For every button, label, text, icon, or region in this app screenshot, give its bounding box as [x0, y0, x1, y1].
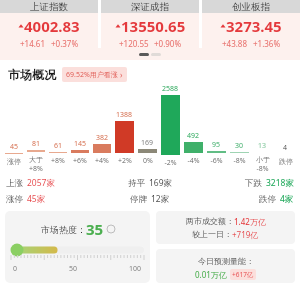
- staticText: 45: [10, 142, 19, 152]
- staticText: 169家: [149, 177, 173, 189]
- staticText: 69.52%用户看涨: [66, 70, 118, 80]
- staticText: 跌停: [279, 157, 293, 166]
- button[interactable]: 持平: [102, 177, 198, 189]
- button[interactable]: 2588: [159, 84, 182, 174]
- staticText: 4家: [280, 193, 294, 205]
- button[interactable]: 1388: [113, 84, 136, 174]
- staticText: +0.90%: [154, 38, 182, 48]
- button[interactable]: 81: [25, 84, 47, 174]
- staticText: 100: [129, 264, 142, 274]
- button[interactable]: 两市成交额：: [156, 211, 295, 244]
- staticText: 深证成指: [131, 1, 169, 13]
- other: 市场热度刻度: [11, 244, 144, 262]
- staticText: 较上一日：: [192, 229, 232, 239]
- staticText: ›: [120, 69, 123, 80]
- staticText: 30: [235, 141, 244, 151]
- staticText: 下跌: [245, 178, 262, 189]
- staticText: +8%: [51, 156, 65, 166]
- button[interactable]: 停牌: [102, 193, 198, 205]
- button[interactable]: 创业板指: [202, 0, 300, 48]
- staticText: +1.36%: [253, 38, 281, 48]
- staticText: -2%: [164, 158, 177, 168]
- button[interactable]: 13: [251, 84, 274, 174]
- staticText: 涨停: [6, 194, 23, 205]
- staticText: 0.01万亿: [195, 269, 227, 280]
- staticText: -6%: [210, 156, 223, 166]
- staticText: 35: [86, 219, 104, 239]
- staticText: 市场热度：: [41, 224, 86, 235]
- staticText: 382: [96, 133, 109, 143]
- staticText: 4: [283, 143, 288, 153]
- button[interactable]: 今日预测量能：: [156, 249, 295, 283]
- staticText: 2057家: [27, 177, 55, 189]
- button[interactable]: 69.52%用户看涨: [62, 67, 127, 82]
- staticText: 0: [13, 264, 18, 274]
- other: 说明: [107, 225, 115, 233]
- staticText: 停牌: [130, 194, 147, 205]
- staticText: 50: [69, 264, 78, 274]
- button[interactable]: 上涨: [6, 177, 102, 189]
- staticText: 上涨: [6, 178, 23, 189]
- staticText: 创业板指: [232, 1, 270, 13]
- staticText: -8%: [256, 164, 269, 174]
- button[interactable]: 45: [3, 84, 25, 174]
- staticText: 45家: [27, 193, 46, 205]
- staticText: +4%: [95, 156, 109, 166]
- button[interactable]: 下跌: [198, 177, 294, 189]
- staticText: 3218家: [266, 177, 294, 189]
- staticText: 跌停: [259, 194, 276, 205]
- button[interactable]: 169: [136, 84, 159, 174]
- staticText: 12家: [151, 193, 170, 205]
- staticText: +6%: [73, 156, 87, 166]
- staticText: 61: [54, 141, 63, 151]
- staticText: 大于: [29, 155, 43, 164]
- button[interactable]: 涨停: [6, 193, 102, 205]
- staticText: +8%: [29, 164, 43, 174]
- staticText: +0.37%: [51, 38, 79, 48]
- button[interactable]: 145: [69, 84, 91, 174]
- staticText: +719亿: [232, 229, 259, 240]
- staticText: +120.55: [119, 38, 149, 48]
- staticText: 81: [32, 139, 41, 149]
- staticText: 169: [141, 138, 154, 148]
- staticText: +2%: [118, 156, 132, 166]
- button[interactable]: 上证指数: [0, 0, 98, 48]
- button[interactable]: 深证成指: [101, 0, 199, 48]
- staticText: 涨停: [7, 157, 21, 166]
- staticText: -8%: [233, 156, 246, 166]
- staticText: 1.42万亿: [234, 216, 266, 227]
- staticText: 市场概况: [8, 67, 56, 82]
- staticText: 4002.83: [24, 16, 80, 36]
- staticText: 今日预测量能：: [198, 256, 254, 266]
- staticText: 145: [74, 139, 87, 149]
- button[interactable]: 95: [205, 84, 228, 174]
- staticText: 3273.45: [226, 16, 282, 36]
- button[interactable]: 4: [274, 84, 297, 174]
- staticText: 0%: [143, 156, 153, 166]
- staticText: +43.88: [222, 38, 248, 48]
- button[interactable]: 跌停: [198, 193, 294, 205]
- staticText: +617亿: [232, 270, 254, 279]
- staticText: 492: [187, 131, 200, 141]
- button[interactable]: 61: [47, 84, 69, 174]
- staticText: 2588: [162, 84, 179, 94]
- staticText: 1388: [116, 110, 133, 120]
- button[interactable]: 市场热度：: [5, 211, 150, 283]
- staticText: 持平: [128, 178, 145, 189]
- button[interactable]: 30: [228, 84, 251, 174]
- staticText: 95: [212, 140, 221, 150]
- staticText: +14.61: [20, 38, 46, 48]
- button[interactable]: 492: [182, 84, 205, 174]
- staticText: -4%: [187, 156, 200, 166]
- staticText: 上证指数: [30, 1, 68, 13]
- button[interactable]: 382: [91, 84, 113, 174]
- staticText: 小于: [256, 155, 270, 164]
- staticText: 13: [258, 141, 267, 151]
- staticText: 13550.65: [121, 16, 186, 36]
- staticText: 两市成交额：: [186, 216, 234, 226]
